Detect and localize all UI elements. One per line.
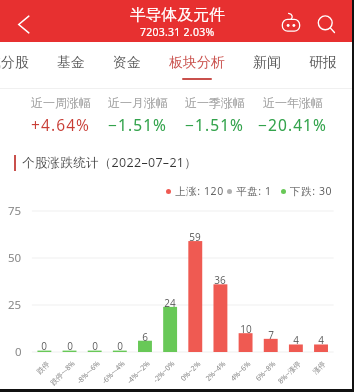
- staticText: 涨停: [311, 359, 328, 376]
- staticText: -4%~-2%: [124, 358, 152, 386]
- button[interactable]: AI assistant: [275, 8, 307, 40]
- staticText: 10: [240, 322, 252, 336]
- staticText: 近一年涨幅: [263, 95, 323, 110]
- staticText: 36: [214, 273, 226, 287]
- button[interactable]: 研报: [309, 42, 337, 89]
- staticText: 近一周涨幅: [31, 95, 91, 110]
- staticText: 半导体及元件: [130, 5, 225, 25]
- staticText: 研报: [309, 54, 337, 72]
- staticText: 下跌: 30: [290, 184, 333, 198]
- button[interactable]: 成分股: [0, 42, 29, 89]
- button[interactable]: 近一周涨幅: [22, 89, 99, 135]
- staticText: 4: [293, 333, 299, 347]
- staticText: 近一月涨幅: [108, 95, 168, 110]
- staticText: 0: [117, 339, 123, 353]
- staticText: 基金: [57, 54, 85, 72]
- staticText: 0: [92, 339, 98, 353]
- staticText: 跌停: [35, 359, 52, 376]
- staticText: 6%~8%: [253, 358, 278, 383]
- staticText: 7203.31 2.03%: [140, 25, 215, 39]
- button[interactable]: 基金: [57, 42, 85, 89]
- staticText: 2%~4%: [203, 358, 228, 383]
- button[interactable]: 板块分析: [169, 42, 225, 89]
- staticText: 0: [41, 339, 47, 353]
- staticText: 成分股: [0, 54, 29, 72]
- staticText: −1.51%: [185, 114, 245, 135]
- staticText: 板块分析: [169, 54, 225, 72]
- staticText: 0: [15, 344, 22, 360]
- button[interactable]: 近一季涨幅: [176, 89, 254, 135]
- staticText: -2%~0%: [151, 358, 177, 384]
- staticText: 4: [318, 333, 324, 347]
- button[interactable]: 近一月涨幅: [99, 89, 176, 135]
- button[interactable]: 新闻: [253, 42, 281, 89]
- button[interactable]: 资金: [113, 42, 141, 89]
- staticText: 平盘: 1: [236, 184, 272, 198]
- staticText: -8%~-6%: [74, 358, 102, 386]
- staticText: 上涨: 120: [175, 184, 224, 198]
- staticText: 25: [8, 297, 22, 313]
- staticText: 24: [164, 296, 176, 310]
- staticText: 50: [8, 250, 22, 266]
- staticText: 个股涨跌统计（2022–07–21）: [22, 154, 198, 171]
- staticText: 0: [67, 339, 73, 353]
- staticText: 6: [142, 330, 148, 344]
- staticText: 0%~2%: [178, 358, 203, 383]
- staticText: 近一季涨幅: [185, 95, 245, 110]
- staticText: +4.64%: [31, 114, 91, 135]
- staticText: 新闻: [253, 54, 281, 72]
- staticText: 8%~涨停: [275, 358, 303, 386]
- staticText: −20.41%: [258, 114, 328, 135]
- staticText: 资金: [113, 54, 141, 72]
- staticText: 4%~6%: [228, 358, 253, 383]
- staticText: 跌停~-8%: [48, 358, 77, 387]
- button[interactable]: 近一年涨幅: [254, 89, 332, 135]
- staticText: -6%~-4%: [99, 358, 127, 386]
- staticText: 75: [8, 203, 22, 219]
- button[interactable]: Back: [6, 7, 40, 41]
- staticText: 59: [189, 230, 201, 244]
- button[interactable]: Search: [310, 8, 342, 40]
- staticText: −1.51%: [108, 114, 168, 135]
- staticText: 7: [268, 328, 274, 342]
